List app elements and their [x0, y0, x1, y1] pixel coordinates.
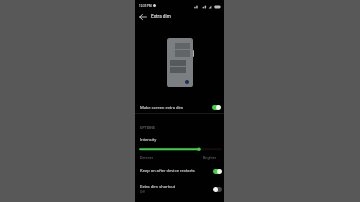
staticText: Dimmer — [140, 156, 153, 160]
button[interactable] — [135, 99, 224, 117]
button[interactable]: Keep on after device restarts — [213, 169, 222, 174]
staticText: Brighter — [203, 156, 216, 160]
staticText: Intensity — [140, 137, 157, 142]
button[interactable] — [135, 163, 224, 179]
button[interactable] — [135, 180, 224, 200]
staticText: 12:33 PM — [139, 4, 152, 7]
staticText: Off — [140, 190, 145, 194]
button[interactable]: Back — [137, 10, 149, 23]
staticText: Extra dim shortcut — [140, 184, 176, 189]
staticText: Make screen extra dim — [140, 105, 184, 110]
staticText: Extra dim — [151, 14, 171, 20]
button[interactable]: Make screen extra dim — [212, 105, 221, 110]
button[interactable]: Extra dim shortcut — [213, 187, 222, 192]
staticText: OPTIONS — [140, 126, 155, 130]
staticText: Keep on after device restarts — [140, 168, 195, 173]
